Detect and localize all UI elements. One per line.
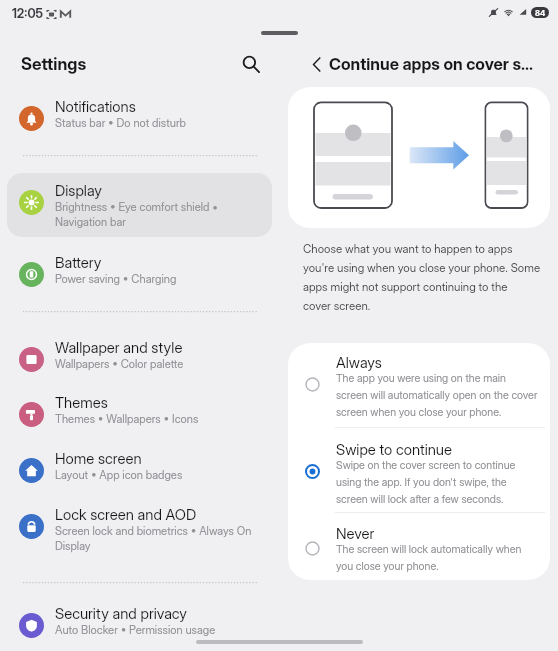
staticText: Home screen <box>55 450 142 468</box>
button[interactable]: Lock screen and AOD <box>7 500 272 554</box>
staticText: Swipe to continue <box>336 441 452 459</box>
button[interactable]: Wallpaper and style <box>7 333 272 387</box>
staticText: Status bar • Do not disturb <box>55 116 186 130</box>
staticText: Choose what you want to happen to apps y… <box>303 242 553 313</box>
staticText: Always <box>336 354 382 372</box>
button[interactable]: Never <box>288 514 550 580</box>
staticText: Auto Blocker • Permission usage <box>55 623 216 637</box>
staticText: Swipe on the cover screen to continue us… <box>336 459 516 506</box>
staticText: Continue apps on cover s... <box>329 54 544 74</box>
staticText: The app you were using on the main scree… <box>336 372 538 419</box>
button[interactable]: Swipe to continue <box>288 430 550 515</box>
staticText: The screen will lock automatically when … <box>336 543 522 573</box>
staticText: Settings <box>21 54 87 74</box>
staticText: Display <box>55 182 102 200</box>
staticText: Battery <box>55 254 102 272</box>
staticText: Layout • App icon badges <box>55 468 183 482</box>
staticText: Never <box>336 525 375 543</box>
staticText: Themes • Wallpapers • Icons <box>55 412 199 426</box>
button[interactable]: Search <box>234 47 267 80</box>
button[interactable]: Battery <box>7 248 272 302</box>
button[interactable]: Always <box>288 343 550 428</box>
staticText: Notifications <box>55 98 136 116</box>
staticText: Wallpapers • Color palette <box>55 357 184 371</box>
button[interactable]: Security and privacy <box>7 599 272 651</box>
button[interactable]: Back <box>302 50 330 78</box>
staticText: Themes <box>55 394 108 412</box>
staticText: Power saving • Charging <box>55 272 177 286</box>
staticText: Screen lock and biometrics • Always On D… <box>55 524 252 553</box>
button[interactable]: Home screen <box>7 444 272 498</box>
staticText: Lock screen and AOD <box>55 506 197 524</box>
staticText: Brightness • Eye comfort shield • Naviga… <box>55 200 221 229</box>
staticText: Security and privacy <box>55 605 187 623</box>
staticText: Wallpaper and style <box>55 339 183 357</box>
staticText: 84 <box>535 8 546 18</box>
button[interactable]: Display <box>7 176 272 230</box>
staticText: 12:05 <box>12 6 44 21</box>
button[interactable]: Themes <box>7 388 272 442</box>
button[interactable]: Notifications <box>7 92 272 146</box>
